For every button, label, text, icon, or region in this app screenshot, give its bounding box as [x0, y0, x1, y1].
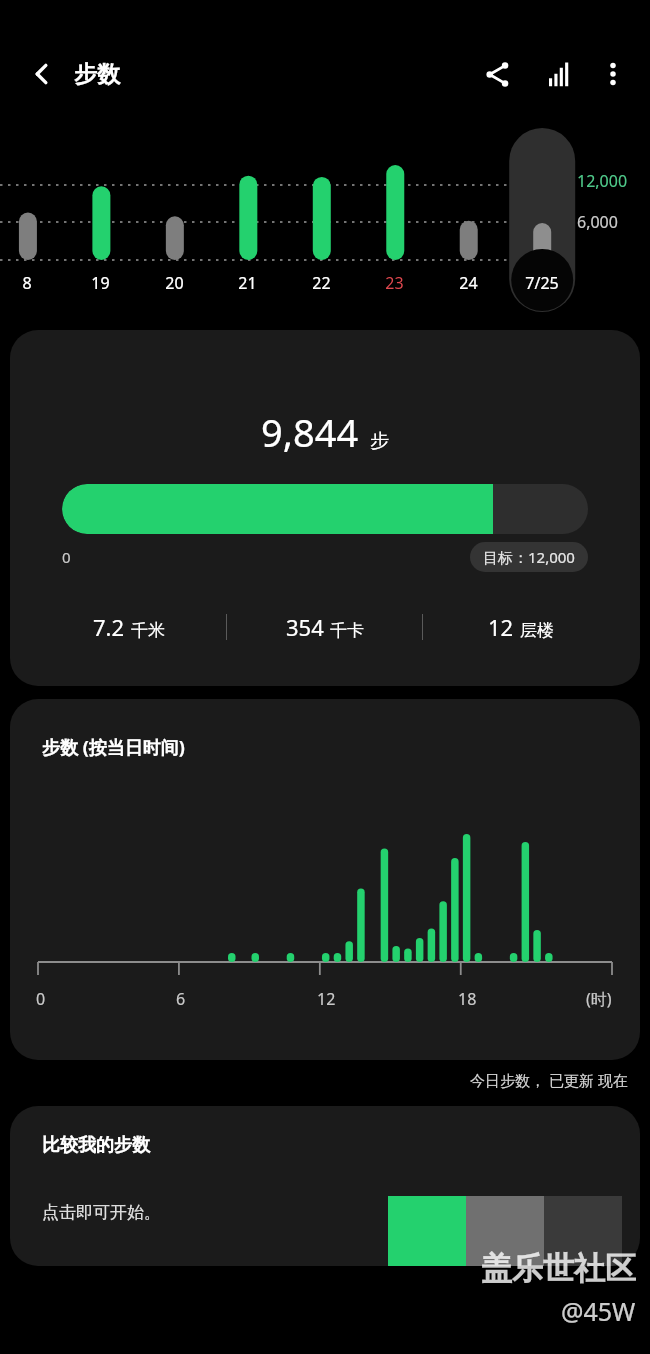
staticText: 9,844 [261, 406, 359, 458]
staticText: 19 [91, 272, 110, 294]
staticText: 千米 [131, 620, 165, 641]
staticText: 步数 (按当日时间) [42, 735, 185, 760]
staticText: 千卡 [330, 620, 364, 641]
staticText: (时) [586, 988, 612, 1010]
staticText: @45W [561, 1294, 636, 1328]
button[interactable]: More options [586, 47, 640, 101]
staticText: 0 [62, 547, 71, 567]
staticText: 24 [459, 272, 478, 294]
staticText: 22 [312, 272, 331, 294]
staticText: 盖乐世社区 [481, 1249, 636, 1288]
button[interactable]: Back [16, 48, 68, 100]
staticText: 20 [165, 272, 184, 294]
staticText: 23 [385, 272, 404, 294]
staticText: 步数 [74, 60, 120, 89]
button[interactable]: Share [470, 47, 524, 101]
staticText: 8 [22, 272, 32, 294]
staticText: 0 [36, 988, 46, 1010]
staticText: 354 [286, 612, 324, 642]
staticText: 6,000 [577, 211, 618, 233]
staticText: 18 [458, 988, 477, 1010]
staticText: 比较我的步数 [42, 1134, 150, 1157]
button[interactable]: 步数 (按当日时间) [10, 699, 640, 1060]
staticText: 层楼 [520, 620, 554, 641]
staticText: 6 [176, 988, 186, 1010]
button[interactable]: 9,844 [10, 330, 640, 686]
staticText: 目标：12,000 [483, 547, 575, 567]
staticText: 12,000 [577, 170, 628, 192]
staticText: 12 [488, 612, 514, 642]
staticText: 7.2 [93, 612, 125, 642]
staticText: 点击即可开始。 [42, 1202, 161, 1223]
staticText: 12 [317, 988, 336, 1010]
staticText: 21 [238, 272, 257, 294]
staticText: 步 [370, 429, 389, 453]
staticText: 今日步数， 已更新 现在 [470, 1070, 628, 1090]
staticText: 7/25 [525, 272, 559, 294]
button[interactable]: 比较我的步数 [10, 1106, 640, 1266]
button[interactable]: Statistics [530, 47, 584, 101]
